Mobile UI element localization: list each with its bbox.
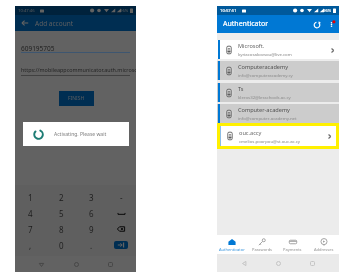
button[interactable]: Home (272, 257, 284, 269)
staticText: Computeracademy (238, 63, 289, 71)
button[interactable]: 2 (46, 189, 76, 205)
staticText: Add account (35, 19, 74, 28)
staticText: cmelios.poorpou@st.ouc.ac.cy (239, 138, 301, 144)
staticText: Passwords (252, 247, 273, 252)
staticText: 3 (89, 192, 94, 203)
staticText: Payments (283, 247, 302, 252)
button[interactable]: Passwords (247, 235, 277, 254)
staticText: info@computer-academy.net (238, 115, 297, 121)
staticText: Addresses (314, 247, 334, 252)
staticText: Ts (238, 85, 244, 93)
button[interactable]: Computer-academy (217, 104, 339, 123)
staticText: 8 (59, 224, 64, 235)
button[interactable]: Microsoft. (217, 40, 339, 59)
button[interactable]: More options (324, 17, 338, 31)
staticText: 5 (59, 208, 64, 219)
button[interactable]: Computeracademy (217, 61, 339, 80)
button[interactable]: Recents (104, 258, 116, 270)
button[interactable]: Payments (277, 235, 308, 254)
button[interactable]: Back (35, 258, 47, 270)
button[interactable]: Refresh (309, 17, 324, 32)
staticText: 7 (28, 224, 33, 235)
button[interactable]: Back (15, 15, 35, 31)
staticText: 4 (28, 208, 33, 219)
staticText: 10:47:46 (18, 8, 35, 14)
staticText: 609195705 (21, 44, 55, 53)
staticText: 10:57:51 (220, 8, 237, 14)
staticText: info@computeracademy.cy (238, 72, 293, 78)
staticText: 1 (28, 192, 33, 203)
button[interactable]: 9 (76, 221, 106, 237)
button[interactable] (106, 205, 136, 221)
staticText: Computer-academy (238, 106, 290, 114)
staticText: ouc.accy (239, 129, 262, 137)
button[interactable]: Home (70, 258, 82, 270)
button[interactable]: 0 (46, 237, 76, 253)
staticText: Authenticator (219, 247, 245, 252)
staticText: Activating. Please wait (54, 131, 107, 138)
button[interactable]: Recents (306, 257, 318, 269)
button[interactable]: Ts (217, 83, 339, 102)
staticText: . (90, 240, 93, 251)
staticText: 6 (89, 208, 94, 219)
button[interactable]: Authenticator (217, 235, 247, 254)
staticText: 0 (59, 240, 64, 251)
button[interactable] (106, 237, 136, 253)
staticText: https://mobileappcommunicator.auth.micro… (21, 66, 136, 73)
button[interactable]: Back (238, 257, 250, 269)
button[interactable]: 7 (15, 221, 46, 237)
button[interactable]: 8 (46, 221, 76, 237)
staticText: - (120, 192, 123, 203)
button[interactable]: 6 (76, 205, 106, 221)
staticText: 96% (323, 8, 332, 14)
staticText: , (29, 240, 32, 251)
staticText: 2 (59, 192, 64, 203)
button[interactable]: FINISH (59, 91, 94, 106)
button[interactable]: 1 (15, 189, 46, 205)
staticText: Authenticator (223, 19, 269, 29)
button[interactable]: 3 (76, 189, 106, 205)
staticText: Microsoft. (238, 42, 265, 50)
button[interactable]: ouc.accy (220, 126, 336, 146)
staticText: 96% (120, 8, 129, 14)
staticText: 9 (89, 224, 94, 235)
button[interactable]: 4 (15, 205, 46, 221)
staticText: kleros32@lesschools.ac.cy (238, 94, 291, 100)
button[interactable]: 5 (46, 205, 76, 221)
staticText: kyriacosakovsou@live.com (238, 51, 292, 57)
button[interactable]: Addresses (308, 235, 339, 254)
button[interactable] (106, 221, 136, 237)
staticText: FINISH (68, 95, 85, 102)
